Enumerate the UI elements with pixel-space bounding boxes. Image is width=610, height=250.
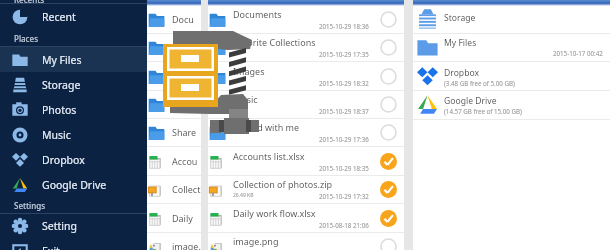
button[interactable]: Shared with me — [208, 118, 404, 146]
staticText: Collection of photos.zip — [233, 178, 333, 190]
staticText: Exit — [42, 244, 60, 250]
button[interactable]: Select — [376, 120, 400, 144]
staticText: Shared with me — [172, 126, 201, 138]
button[interactable]: Select — [376, 234, 400, 250]
button[interactable]: Images — [208, 62, 404, 90]
staticText: Recents — [14, 0, 45, 4]
staticText: 2015-10-29 18:37 — [319, 107, 369, 115]
button[interactable]: Collection of photos.zip — [208, 175, 404, 203]
staticText: Favorite Collections — [233, 36, 316, 48]
button[interactable]: Photos — [0, 97, 147, 122]
staticText: Recent — [42, 10, 76, 24]
staticText: 2015-08-18 21:06 — [319, 221, 369, 229]
staticText: (3.48 GB free of 5.00 GB) — [444, 79, 515, 87]
staticText: Settings — [14, 200, 46, 211]
button[interactable]: Select — [376, 7, 400, 31]
staticText: (14.57 GB free of 15.00 GB) — [444, 107, 522, 115]
staticText: Music — [233, 93, 258, 105]
button[interactable]: Exit — [0, 238, 147, 250]
staticText: Music — [172, 98, 197, 110]
staticText: image.png — [172, 240, 201, 250]
staticText: image.png — [233, 235, 279, 247]
button[interactable]: Selected — [376, 149, 400, 173]
staticText: 2015-10-29 18:36 — [319, 22, 369, 30]
button[interactable]: Images — [147, 62, 201, 90]
button[interactable]: Daily work flow.xlsx — [208, 204, 404, 232]
button[interactable]: Selected — [376, 177, 400, 201]
button[interactable]: Google Drive — [0, 172, 147, 197]
button[interactable]: Documents — [208, 5, 404, 33]
staticText: Dropbox — [444, 67, 479, 79]
button[interactable]: Favorite Collections — [147, 33, 201, 61]
button[interactable]: Collection of photos.zip — [147, 175, 201, 203]
staticText: Google Drive — [444, 95, 497, 107]
staticText: Dropbox — [42, 153, 85, 167]
button[interactable]: Dropbox — [0, 147, 147, 172]
button[interactable]: Storage — [413, 4, 610, 32]
staticText: Documents — [172, 13, 201, 25]
staticText: 2015-10-17 00:42 — [553, 49, 603, 57]
button[interactable]: Select — [376, 64, 400, 88]
button[interactable]: Shared with me — [147, 118, 201, 146]
button[interactable]: Music — [0, 122, 147, 147]
staticText: Accounts list.xlsx — [172, 155, 201, 167]
staticText: Google Drive — [42, 178, 107, 192]
button[interactable]: Accounts list.xlsx — [147, 147, 201, 175]
button[interactable]: Select — [376, 92, 400, 116]
button[interactable]: My Files — [413, 33, 610, 61]
button[interactable]: Favorite Collections — [208, 33, 404, 61]
staticText: 2015-10-29 18:32 — [319, 79, 369, 87]
staticText: Setting — [42, 219, 77, 233]
staticText: My Files — [42, 53, 82, 67]
button[interactable]: My Files — [0, 47, 147, 72]
staticText: Daily work flow.xlsx — [233, 207, 316, 219]
button[interactable]: image.png — [208, 232, 404, 250]
staticText: 2015-10-29 17:36 — [319, 135, 369, 143]
staticText: Storage — [42, 78, 81, 92]
button[interactable]: Music — [147, 90, 201, 118]
staticText: Documents — [233, 8, 282, 20]
button[interactable]: Music — [208, 90, 404, 118]
button[interactable]: Daily work flow.xlsx — [147, 204, 201, 232]
staticText: Images — [233, 65, 265, 77]
button[interactable]: Select — [376, 35, 400, 59]
staticText: Images — [172, 70, 201, 82]
staticText: Favorite Collections — [172, 41, 201, 53]
staticText: Shared with me — [233, 121, 300, 133]
staticText: Daily work flow.xlsx — [172, 212, 201, 224]
button[interactable]: Selected — [376, 206, 400, 230]
staticText: Music — [42, 128, 71, 142]
staticText: 2015-10-29 17:35 — [319, 50, 369, 58]
button[interactable]: Dropbox — [413, 62, 610, 90]
staticText: 26.49 KB — [233, 192, 254, 199]
staticText: Accounts list.xlsx — [233, 150, 305, 162]
button[interactable]: image.png — [147, 232, 201, 250]
button[interactable]: Storage — [0, 72, 147, 97]
staticText: Storage — [444, 12, 476, 24]
button[interactable]: Accounts list.xlsx — [208, 147, 404, 175]
staticText: 2015-10-29 18:35 — [319, 164, 369, 172]
staticText: My Files — [444, 37, 477, 49]
staticText: Collection of photos.zip — [172, 183, 201, 195]
button[interactable]: Setting — [0, 213, 147, 238]
button[interactable]: Recent — [0, 4, 147, 29]
staticText: Photos — [42, 103, 77, 117]
button[interactable]: Google Drive — [413, 90, 610, 118]
button[interactable]: Documents — [147, 5, 201, 33]
staticText: Places — [14, 33, 39, 44]
staticText: 2015-10-29 17:32 — [319, 192, 369, 200]
